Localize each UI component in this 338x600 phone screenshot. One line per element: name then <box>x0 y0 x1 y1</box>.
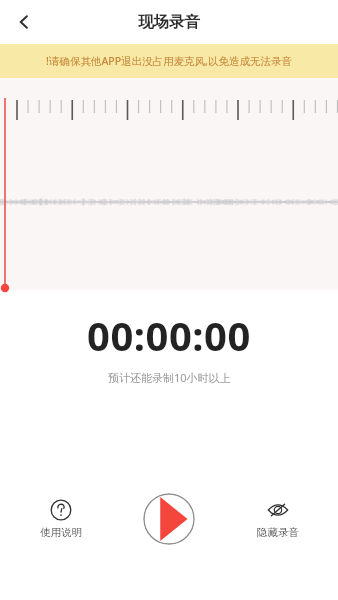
staticText: 00:00:00 <box>87 308 251 362</box>
button[interactable]: Hide recording <box>249 495 307 543</box>
staticText: 预计还能录制10小时以上 <box>108 370 231 385</box>
staticText: 隐藏录音 <box>257 526 299 539</box>
button[interactable]: Help <box>32 495 90 543</box>
button[interactable]: Back <box>8 6 40 38</box>
other: Help <box>50 499 72 521</box>
button[interactable]: Start recording <box>143 493 195 545</box>
other: Hide recording <box>267 499 289 521</box>
staticText: 现场录音 <box>138 12 200 32</box>
staticText: 使用说明 <box>40 526 82 539</box>
staticText: !请确保其他APP退出没占用麦克风,以免造成无法录音 <box>46 54 292 68</box>
